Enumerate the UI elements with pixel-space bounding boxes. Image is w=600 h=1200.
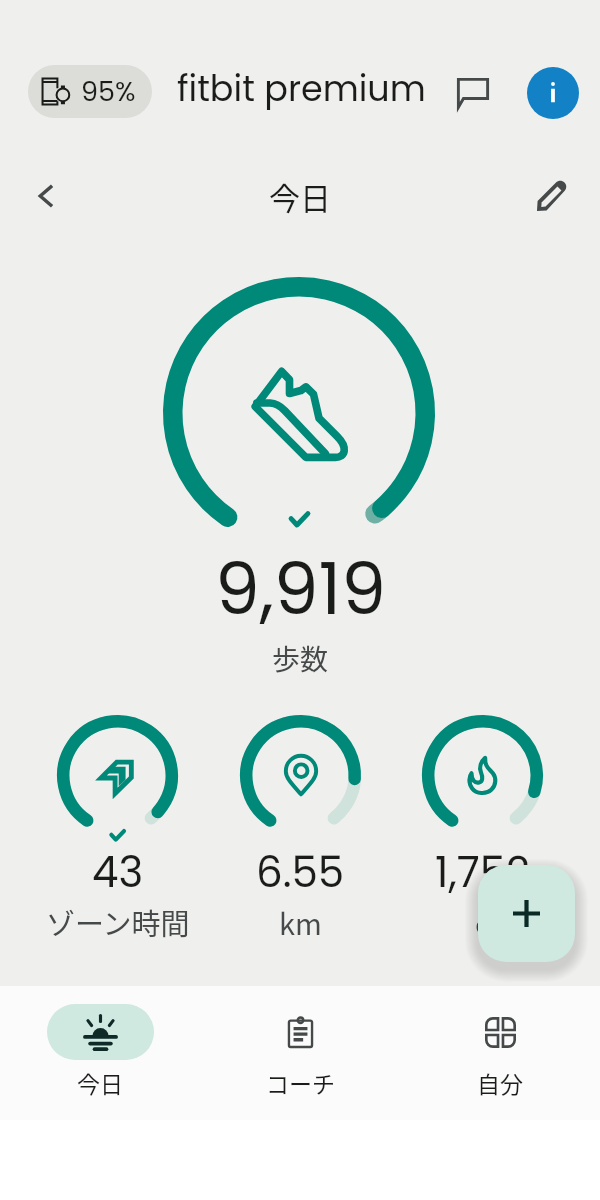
- staticText: コーチ: [266, 1066, 335, 1099]
- staticText: ゾーン時間: [46, 901, 190, 943]
- button[interactable]: Information: [527, 67, 579, 119]
- button[interactable]: コーチ: [200, 986, 400, 1120]
- button[interactable]: Messages: [449, 69, 497, 117]
- staticText: 1,752: [435, 843, 531, 902]
- button[interactable]: 43: [27, 705, 208, 950]
- staticText: km: [279, 901, 322, 943]
- button[interactable]: 1,752: [392, 705, 573, 950]
- staticText: 95%: [81, 73, 136, 111]
- staticText: c: [475, 901, 490, 943]
- button[interactable]: 今日: [0, 986, 200, 1120]
- staticText: 43: [92, 843, 144, 902]
- button[interactable]: 自分: [400, 986, 600, 1120]
- button[interactable]: Back: [22, 172, 70, 220]
- staticText: fitbit premium: [177, 64, 426, 113]
- staticText: 今日: [269, 174, 331, 219]
- button[interactable]: Edit: [528, 172, 576, 220]
- button[interactable]: 95%: [28, 65, 152, 118]
- staticText: 歩数: [272, 638, 329, 679]
- button[interactable]: 6.55: [210, 705, 391, 950]
- staticText: 9,919: [215, 539, 386, 638]
- button[interactable]: Add: [478, 865, 575, 962]
- staticText: 6.55: [256, 843, 345, 902]
- staticText: 自分: [477, 1066, 523, 1099]
- staticText: 今日: [77, 1066, 123, 1099]
